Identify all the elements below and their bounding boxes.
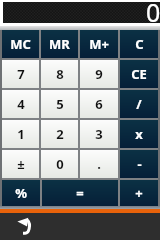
button[interactable]: M+ xyxy=(80,30,118,58)
staticText: / xyxy=(136,95,142,113)
staticText: 7 xyxy=(17,65,25,83)
button[interactable]: - xyxy=(120,150,158,178)
staticText: M+ xyxy=(89,35,109,53)
staticText: MR xyxy=(49,35,70,53)
button[interactable]: 3 xyxy=(80,120,118,148)
staticText: . xyxy=(97,155,101,173)
staticText: 2 xyxy=(56,125,64,143)
staticText: CE xyxy=(131,65,147,83)
button[interactable]: 4 xyxy=(2,90,39,118)
staticText: x xyxy=(135,125,143,143)
staticText: ± xyxy=(17,155,25,173)
button[interactable]: 0 xyxy=(41,150,78,178)
staticText: = xyxy=(76,184,84,202)
button[interactable]: 2 xyxy=(41,120,78,148)
button[interactable]: = xyxy=(42,180,118,206)
staticText: - xyxy=(137,155,142,173)
button[interactable]: 1 xyxy=(2,120,39,148)
button[interactable]: Back xyxy=(0,213,48,240)
button[interactable]: MR xyxy=(41,30,78,58)
button[interactable]: 5 xyxy=(41,90,78,118)
button[interactable]: ± xyxy=(2,150,39,178)
staticText: % xyxy=(15,184,27,202)
button[interactable]: C xyxy=(120,30,158,58)
button[interactable]: + xyxy=(120,180,158,206)
button[interactable]: 8 xyxy=(41,60,78,88)
staticText: 0 xyxy=(56,155,64,173)
staticText: 1 xyxy=(17,125,25,143)
staticText: 0 xyxy=(146,0,160,29)
staticText: MC xyxy=(10,35,31,53)
staticText: 6 xyxy=(95,95,103,113)
button[interactable]: x xyxy=(120,120,158,148)
button[interactable]: / xyxy=(120,90,158,118)
button[interactable]: MC xyxy=(2,30,39,58)
button[interactable]: CE xyxy=(120,60,158,88)
button[interactable]: 6 xyxy=(80,90,118,118)
staticText: C xyxy=(135,35,144,53)
staticText: + xyxy=(135,184,143,202)
staticText: 5 xyxy=(56,95,64,113)
button[interactable]: 9 xyxy=(80,60,118,88)
staticText: 9 xyxy=(95,65,103,83)
staticText: 8 xyxy=(56,65,64,83)
staticText: 3 xyxy=(95,125,103,143)
button[interactable]: . xyxy=(80,150,118,178)
button[interactable]: 7 xyxy=(2,60,39,88)
button[interactable]: % xyxy=(2,180,40,206)
staticText: 4 xyxy=(17,95,25,113)
